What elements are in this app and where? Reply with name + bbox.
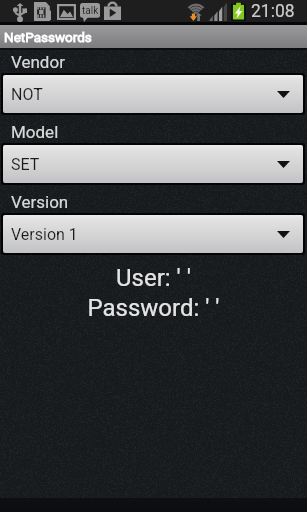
staticText: Version — [11, 192, 69, 212]
staticText: NetPasswords — [4, 29, 92, 45]
other: Battery charging — [231, 2, 246, 21]
staticText: 21:08 — [251, 1, 295, 22]
staticText: Version 1 — [11, 225, 78, 244]
staticText: SET — [11, 155, 40, 174]
staticText: Model — [11, 122, 59, 142]
staticText: User: ' ' — [0, 264, 307, 292]
button[interactable]: NetPasswords — [0, 25, 307, 48]
other: Play Store — [104, 2, 121, 20]
other: Wi-Fi signal — [187, 3, 205, 21]
other: Screenshot captured — [57, 4, 76, 20]
staticText: talk — [82, 5, 99, 17]
other: Google Talk — [80, 3, 100, 22]
staticText: Vendor — [11, 52, 65, 72]
button[interactable]: Version 1 — [1, 213, 305, 255]
staticText: NOT — [11, 85, 43, 104]
staticText: Password: ' ' — [0, 294, 307, 322]
other: SD card — [34, 2, 51, 21]
button[interactable]: SET — [1, 143, 305, 185]
other: Mobile signal strength — [209, 3, 228, 21]
button[interactable]: NOT — [1, 73, 305, 115]
other: USB connected — [14, 3, 26, 21]
